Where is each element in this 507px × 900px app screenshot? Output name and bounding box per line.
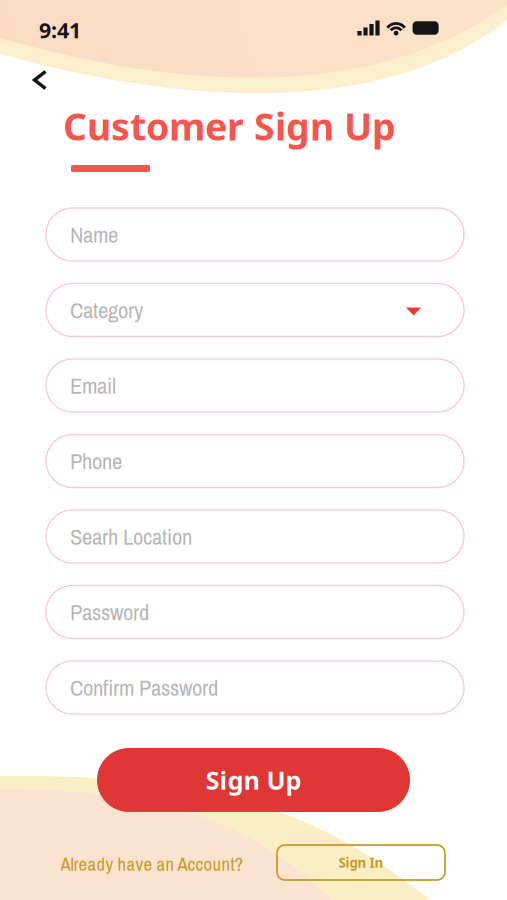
staticText: Category: [70, 295, 143, 325]
button[interactable]: Password: [46, 585, 464, 638]
staticText: Already have an Account?: [60, 851, 243, 876]
staticText: Password: [70, 597, 149, 627]
staticText: Customer Sign Up: [63, 101, 396, 151]
button[interactable]: Sign In: [277, 845, 445, 880]
button[interactable]: Confirm Password: [46, 661, 464, 714]
button[interactable]: Email: [46, 359, 464, 412]
button[interactable]: Name: [46, 208, 464, 261]
button[interactable]: Sign Up: [97, 748, 410, 812]
button[interactable]: Category: [46, 283, 464, 336]
staticText: Searh Location: [70, 521, 192, 552]
button[interactable]: Back: [19, 57, 60, 102]
staticText: 9:41: [39, 15, 81, 45]
staticText: Confirm Password: [70, 672, 218, 703]
staticText: Sign In: [338, 853, 383, 872]
staticText: Phone: [70, 446, 122, 476]
button[interactable]: Searh Location: [46, 510, 464, 563]
staticText: Sign Up: [205, 763, 301, 797]
staticText: Name: [70, 219, 118, 250]
button[interactable]: Phone: [46, 434, 464, 487]
staticText: Email: [70, 370, 116, 401]
